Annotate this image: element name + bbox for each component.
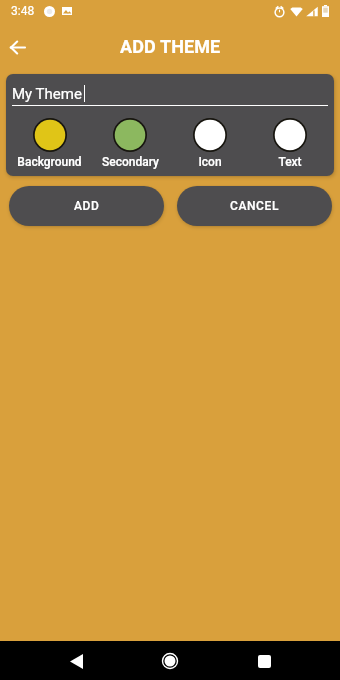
staticText: 3:48 [11, 4, 35, 18]
button[interactable]: My Theme [12, 85, 328, 106]
staticText: My Theme [12, 85, 82, 103]
button[interactable]: Back [60, 645, 92, 677]
button[interactable]: CANCEL [177, 186, 332, 226]
button[interactable]: Icon [170, 118, 250, 169]
button[interactable]: ADD [9, 186, 164, 226]
staticText: ADD [74, 199, 100, 213]
staticText: ADD THEME [120, 36, 221, 57]
staticText: Text [278, 155, 302, 169]
staticText: Secondary [102, 155, 159, 169]
button[interactable]: Recent apps [248, 645, 280, 677]
button[interactable]: Background [9, 118, 90, 169]
button[interactable]: Text [250, 118, 330, 169]
button[interactable]: Secondary [90, 118, 170, 169]
staticText: Background [17, 155, 82, 169]
button[interactable]: Home [154, 645, 186, 677]
button[interactable]: Back [3, 33, 31, 61]
staticText: CANCEL [230, 199, 279, 213]
staticText: Icon [198, 155, 222, 169]
